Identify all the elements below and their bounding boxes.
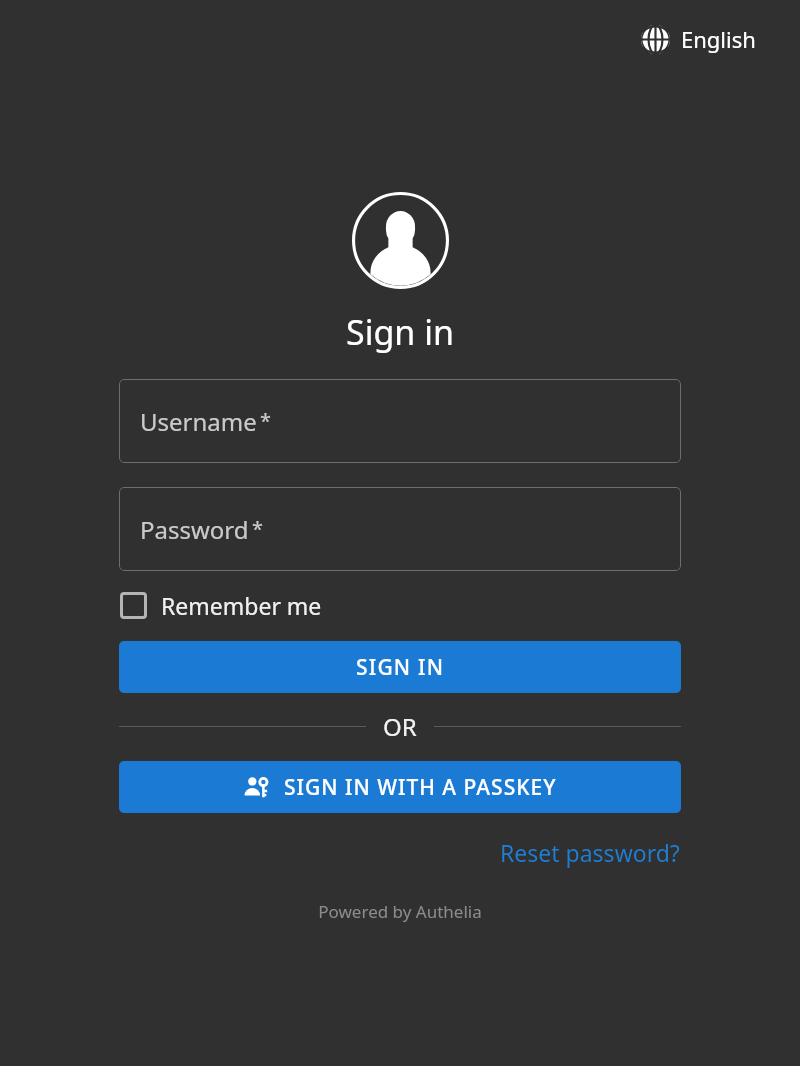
other: Passkey	[243, 774, 270, 801]
other: Account avatar	[352, 192, 449, 289]
staticText: Password	[140, 513, 249, 546]
staticText: SIGN IN WITH A PASSKEY	[284, 773, 557, 802]
staticText: Powered by Authelia	[318, 900, 482, 923]
staticText: *	[260, 407, 272, 434]
other: Language	[641, 25, 670, 54]
button[interactable]: Language	[639, 22, 758, 56]
button[interactable]: Reset password?	[499, 835, 681, 870]
button[interactable]: Username	[119, 379, 681, 463]
staticText: Username	[140, 405, 257, 438]
staticText: OR	[383, 710, 417, 743]
staticText: English	[681, 24, 756, 54]
staticText: Sign in	[346, 309, 454, 355]
button[interactable]: Passkey	[119, 761, 681, 813]
button[interactable]: SIGN IN	[119, 641, 681, 693]
staticText: Remember me	[161, 590, 322, 621]
button[interactable]: Password	[119, 487, 681, 571]
staticText: *	[252, 515, 264, 542]
button[interactable]: Remember me	[119, 587, 323, 624]
staticText: SIGN IN	[356, 653, 445, 682]
